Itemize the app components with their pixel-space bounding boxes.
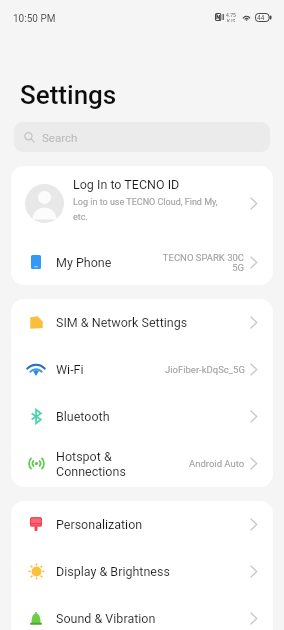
button[interactable]: Hotspot & — [11, 440, 273, 487]
staticText: Connections — [56, 464, 126, 479]
staticText: Hotspot & — [56, 449, 112, 464]
button[interactable]: Sound & Vibration — [11, 595, 273, 630]
staticText: JioFiber-kDqSc_5G — [165, 364, 245, 375]
staticText: Bluetooth — [56, 409, 110, 424]
staticText: TECNO SPARK 30C 5G — [162, 252, 244, 274]
button[interactable]: My Phone — [11, 240, 273, 285]
button[interactable]: Log In to TECNO ID — [11, 166, 273, 240]
staticText: Personalization — [56, 517, 143, 532]
staticText: Log In to TECNO ID — [73, 177, 180, 192]
staticText: Display & Brightness — [56, 564, 170, 579]
staticText: K/S — [227, 18, 236, 22]
staticText: Search — [42, 131, 78, 144]
staticText: Sound & Vibration — [56, 611, 156, 626]
button[interactable]: SIM & Network Settings — [11, 299, 273, 346]
staticText: My Phone — [56, 255, 112, 270]
staticText: 44 — [257, 14, 265, 22]
button[interactable]: Bluetooth — [11, 393, 273, 440]
staticText: 4.75 — [226, 12, 236, 18]
button[interactable]: Display & Brightness — [11, 548, 273, 595]
staticText: Wi-Fi — [56, 362, 84, 377]
button[interactable]: Personalization — [11, 501, 273, 548]
staticText: Android Auto — [189, 458, 245, 469]
staticText: 10:50 PM — [13, 13, 56, 25]
button[interactable]: Wi-Fi — [11, 346, 273, 393]
staticText: Log in to use TECNO Cloud, Find My, etc. — [73, 197, 218, 222]
button[interactable]: Search — [14, 122, 270, 152]
staticText: Settings — [20, 80, 117, 110]
staticText: SIM & Network Settings — [56, 315, 188, 330]
